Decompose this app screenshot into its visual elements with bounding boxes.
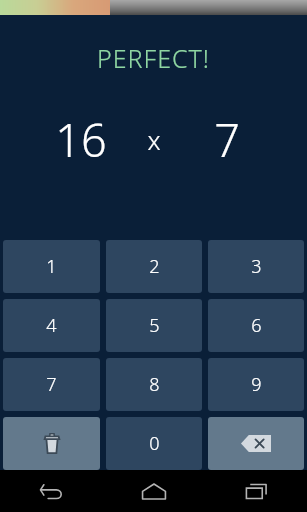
button[interactable]: 8 (106, 358, 202, 411)
button[interactable]: Back (0, 470, 103, 512)
staticText: 1 (46, 254, 57, 279)
button[interactable]: Recent apps (205, 470, 307, 512)
button[interactable]: 6 (208, 299, 304, 352)
button[interactable]: 4 (3, 299, 100, 352)
button[interactable]: Backspace (208, 417, 304, 470)
button[interactable]: Clear (3, 417, 100, 470)
staticText: 5 (149, 313, 160, 338)
staticText: 7 (214, 109, 240, 170)
button[interactable]: 1 (3, 240, 100, 293)
button[interactable]: 7 (3, 358, 100, 411)
staticText: PERFECT! (97, 41, 210, 75)
staticText: 4 (46, 313, 57, 338)
staticText: 0 (149, 431, 160, 456)
staticText: 7 (46, 372, 57, 397)
staticText: 16 (55, 109, 107, 170)
staticText: 6 (251, 313, 262, 338)
staticText: 2 (149, 254, 160, 279)
staticText: 9 (251, 372, 262, 397)
button[interactable]: Home (103, 470, 205, 512)
button[interactable]: 9 (208, 358, 304, 411)
staticText: 3 (251, 254, 262, 279)
button[interactable]: 2 (106, 240, 202, 293)
button[interactable]: 0 (106, 417, 202, 470)
staticText: 8 (149, 372, 160, 397)
button[interactable]: 5 (106, 299, 202, 352)
button[interactable]: 3 (208, 240, 304, 293)
staticText: x (147, 122, 161, 157)
